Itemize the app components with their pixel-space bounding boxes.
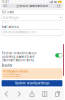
staticText: Update security settings	[15, 81, 49, 85]
staticText: Security	[2, 64, 12, 67]
staticText: 9:41	[2, 0, 9, 3]
staticText: AA	[3, 4, 7, 8]
button[interactable]: Share	[26, 88, 38, 99]
button[interactable]: Forward	[13, 88, 26, 99]
button[interactable]: Bookmarks	[38, 88, 51, 99]
button[interactable]: Update security settings	[2, 80, 62, 86]
staticText: Alex Morgan	[3, 16, 19, 19]
staticText: We sent a confirmation link.	[3, 74, 20, 75]
button[interactable]: Notifications	[55, 51, 62, 57]
staticText: Email address	[2, 25, 19, 29]
staticText: Check your inbox to finish.	[3, 76, 21, 77]
staticText: Receive reminders about upcoming payment…	[2, 51, 37, 62]
staticText: secure.acmebank.com	[19, 4, 47, 8]
staticText: alex.morgan@example.com	[3, 30, 36, 34]
staticText: Required	[2, 21, 9, 23]
button[interactable]: Reload	[55, 4, 62, 8]
button[interactable]: Back	[0, 88, 13, 99]
staticText: Full name	[2, 10, 15, 14]
button[interactable]: Tabs	[51, 88, 64, 99]
staticText: Verify your email	[3, 70, 28, 73]
button[interactable]: Page settings	[2, 4, 8, 8]
